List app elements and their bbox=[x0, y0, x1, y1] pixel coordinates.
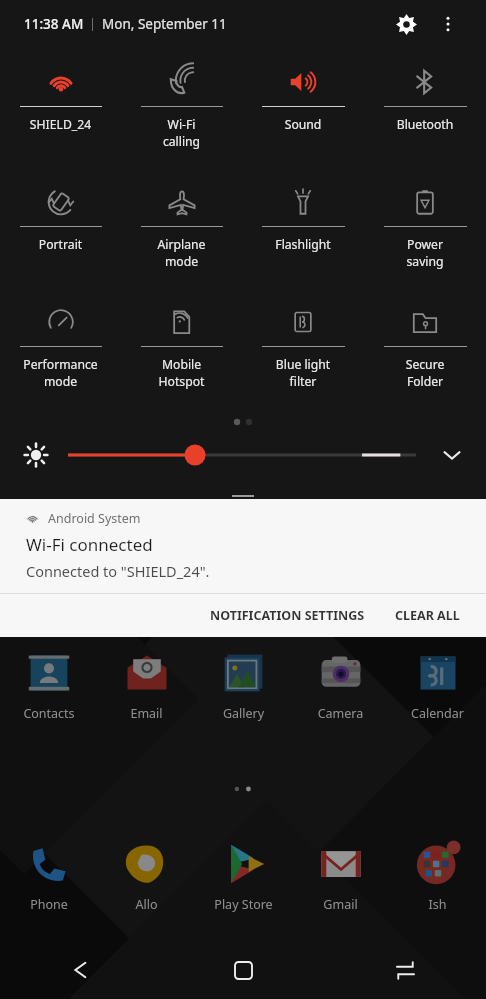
button[interactable]: Ish bbox=[389, 839, 486, 931]
staticText: Bluetooth bbox=[364, 116, 486, 133]
staticText: Android System bbox=[48, 510, 141, 527]
staticText: Gmail bbox=[292, 896, 389, 913]
button[interactable]: Blue light filter bbox=[242, 297, 364, 417]
button[interactable]: Calendar bbox=[389, 648, 486, 740]
button[interactable]: Email bbox=[98, 648, 195, 740]
button[interactable] bbox=[232, 495, 254, 499]
button[interactable]: NOTIFICATION SETTINGS bbox=[198, 594, 377, 637]
button[interactable]: Sound bbox=[242, 57, 364, 177]
button[interactable]: Phone bbox=[0, 839, 98, 931]
button[interactable]: Play Store bbox=[195, 839, 292, 931]
staticText: Wi-Fi calling bbox=[121, 116, 242, 150]
button[interactable]: Recent apps bbox=[162, 941, 324, 999]
staticText: Allo bbox=[98, 896, 195, 913]
staticText: Play Store bbox=[195, 896, 292, 913]
staticText: Mon, September 11 bbox=[102, 15, 227, 33]
button[interactable]: Flashlight bbox=[242, 177, 364, 297]
staticText: Gallery bbox=[195, 705, 292, 722]
button[interactable]: Power saving bbox=[364, 177, 486, 297]
button[interactable]: Gmail bbox=[292, 839, 389, 931]
staticText: Calendar bbox=[389, 705, 486, 722]
button[interactable]: Airplane mode bbox=[121, 177, 242, 297]
staticText: Secure Folder bbox=[364, 356, 486, 390]
staticText: Power saving bbox=[364, 236, 486, 270]
button[interactable]: Bluetooth bbox=[364, 57, 486, 177]
staticText: Airplane mode bbox=[121, 236, 242, 270]
button[interactable]: CLEAR ALL bbox=[391, 594, 464, 637]
staticText: Flashlight bbox=[242, 236, 364, 253]
button[interactable]: Settings bbox=[386, 4, 426, 44]
staticText: 11:38 AM bbox=[24, 15, 84, 33]
staticText: Blue light filter bbox=[242, 356, 364, 390]
button[interactable]: Wi-Fi calling bbox=[121, 57, 242, 177]
staticText: SHIELD_24 bbox=[0, 116, 121, 133]
staticText: Ish bbox=[389, 896, 486, 913]
staticText: Portrait bbox=[0, 236, 121, 253]
staticText: Wi-Fi connected bbox=[26, 533, 153, 556]
staticText: Contacts bbox=[0, 705, 98, 722]
button[interactable]: Allo bbox=[98, 839, 195, 931]
button[interactable] bbox=[68, 440, 416, 470]
button[interactable]: Secure Folder bbox=[364, 297, 486, 417]
staticText: Email bbox=[98, 705, 195, 722]
staticText: CLEAR ALL bbox=[395, 607, 460, 624]
button[interactable]: Portrait bbox=[0, 177, 121, 297]
staticText: Sound bbox=[242, 116, 364, 133]
staticText: Mobile Hotspot bbox=[121, 356, 242, 390]
button[interactable]: Mobile Hotspot bbox=[121, 297, 242, 417]
button[interactable]: Android System bbox=[0, 499, 486, 593]
staticText: Connected to "SHIELD_24". bbox=[26, 561, 210, 581]
button[interactable]: Performance mode bbox=[0, 297, 121, 417]
button[interactable]: Contacts bbox=[0, 648, 98, 740]
button[interactable]: Expand brightness settings bbox=[432, 435, 472, 475]
button[interactable]: Gallery bbox=[195, 648, 292, 740]
button[interactable]: Camera bbox=[292, 648, 389, 740]
button[interactable]: Switch bbox=[324, 941, 486, 999]
staticText: Phone bbox=[0, 896, 98, 913]
staticText: Camera bbox=[292, 705, 389, 722]
staticText: NOTIFICATION SETTINGS bbox=[210, 607, 365, 624]
staticText: Performance mode bbox=[0, 356, 121, 390]
button[interactable]: More options bbox=[428, 4, 468, 44]
button[interactable]: Back bbox=[0, 941, 162, 999]
button[interactable]: SHIELD_24 bbox=[0, 57, 121, 177]
